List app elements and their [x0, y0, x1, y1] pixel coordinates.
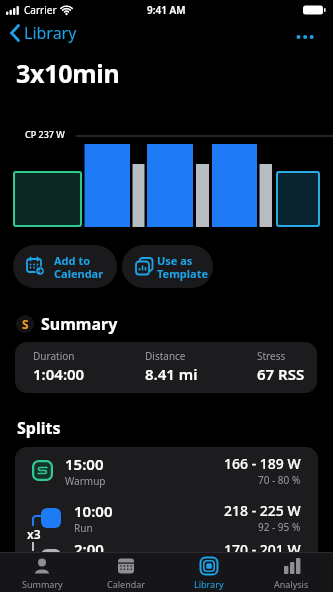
staticText: Warmup	[65, 474, 106, 488]
staticText: 3x10min	[16, 56, 120, 90]
staticText: Analysis	[274, 578, 309, 590]
staticText: 70 - 80 %	[258, 473, 301, 487]
button[interactable]: Calendar	[84, 553, 167, 592]
button[interactable]: Analysis	[250, 553, 333, 592]
staticText: 218 - 225 W	[224, 501, 301, 520]
button[interactable]: Summary	[0, 553, 84, 592]
staticText: Run	[74, 521, 93, 535]
staticText: x3	[27, 526, 41, 542]
button[interactable]: Library	[9, 22, 77, 44]
staticText: Summary	[41, 313, 118, 335]
staticText: 2:00	[74, 539, 104, 559]
staticText: Library	[194, 578, 224, 590]
staticText: 166 - 189 W	[224, 454, 301, 473]
staticText: Summary	[22, 578, 63, 590]
staticText: Library	[24, 22, 77, 44]
staticText: Stress	[257, 349, 286, 363]
button[interactable]: 10:00	[15, 499, 318, 536]
staticText: 9:41 AM	[147, 3, 186, 17]
staticText: 92 - 95 %	[258, 520, 301, 534]
button[interactable]: Use as Template	[122, 245, 213, 288]
staticText: Distance	[145, 349, 186, 363]
staticText: Calendar	[107, 578, 145, 590]
staticText: 170 - 201 W	[224, 540, 301, 559]
staticText: S	[22, 316, 29, 332]
button[interactable]: Library	[167, 553, 250, 592]
staticText: 8.41 mi	[145, 364, 198, 384]
staticText: Carrier	[24, 3, 57, 17]
staticText: Duration	[33, 349, 75, 363]
button[interactable]	[296, 33, 316, 41]
button[interactable]: 15:00	[15, 452, 318, 489]
staticText: 1:04:00	[33, 364, 85, 384]
staticText: 10:00	[74, 501, 113, 521]
staticText: Use as Template	[157, 253, 213, 281]
staticText: 15:00	[65, 454, 104, 474]
staticText: Add to Calendar	[54, 253, 116, 281]
staticText: 67 RSS	[257, 364, 305, 384]
staticText: CP 237 W	[25, 128, 65, 140]
button[interactable]: Add to Calendar	[13, 245, 117, 288]
staticText: Splits	[17, 417, 61, 439]
